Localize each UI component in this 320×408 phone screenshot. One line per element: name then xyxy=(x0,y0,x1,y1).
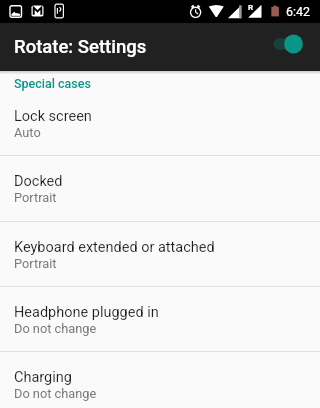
staticText: Docked xyxy=(14,173,63,190)
staticText: Headphone plugged in xyxy=(14,304,159,321)
staticText: Charging xyxy=(14,369,72,386)
staticText: Do not change xyxy=(14,321,97,336)
staticText: Special cases xyxy=(14,76,91,91)
button[interactable]: Keyboard extended or attached xyxy=(0,222,320,287)
staticText: Lock screen xyxy=(14,108,92,125)
button[interactable]: Headphone plugged in xyxy=(0,287,320,352)
staticText: Auto xyxy=(14,125,41,140)
button[interactable]: Docked xyxy=(0,156,320,222)
button[interactable]: Lock screen xyxy=(0,91,320,156)
staticText: Portrait xyxy=(14,190,57,205)
staticText: Portrait xyxy=(14,256,57,271)
button[interactable]: Charging xyxy=(0,352,320,408)
staticText: R xyxy=(248,3,254,12)
staticText: Rotate: Settings xyxy=(14,36,147,58)
staticText: 6:42 xyxy=(286,4,311,19)
button[interactable]: Special cases xyxy=(0,71,320,91)
staticText: Do not change xyxy=(14,386,97,401)
button[interactable]: Toggle rotation service xyxy=(272,26,314,68)
staticText: Keyboard extended or attached xyxy=(14,239,215,256)
